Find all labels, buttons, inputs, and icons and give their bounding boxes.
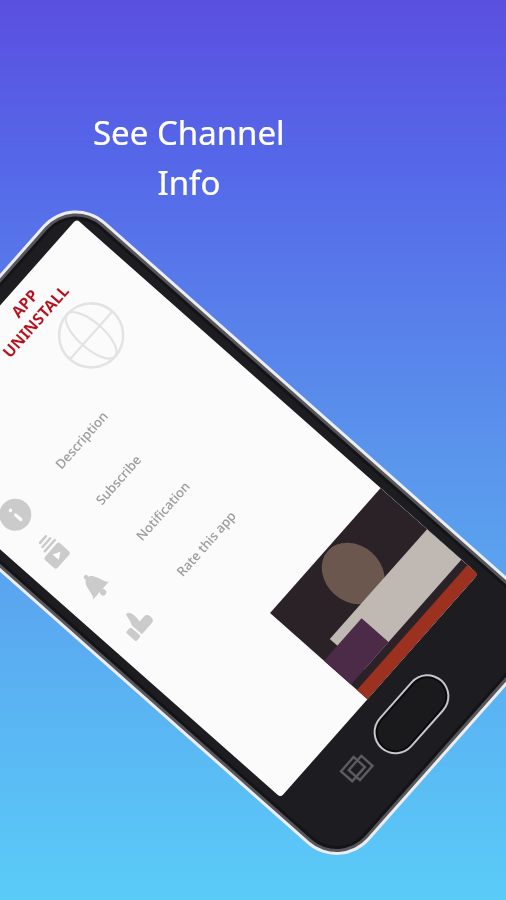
button[interactable]: See Channel Info promotional screen [0,0,506,900]
